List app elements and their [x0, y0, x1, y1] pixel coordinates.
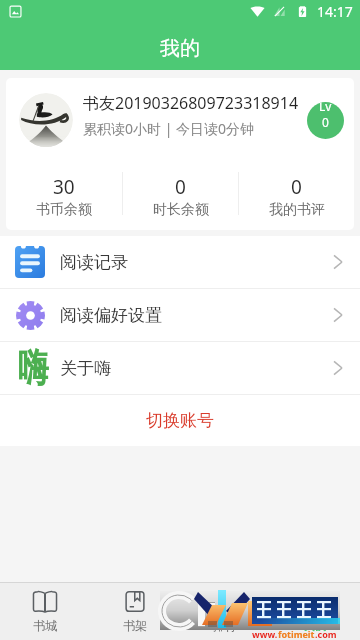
staticText: 阅读记录 — [60, 252, 330, 273]
staticText: 我的 — [160, 36, 200, 61]
staticText: 30 — [53, 174, 75, 200]
staticText: 关于嗨 — [60, 358, 330, 379]
staticText: 0 — [291, 174, 302, 200]
button[interactable]: 阅读偏好设置 — [0, 289, 360, 341]
button[interactable]: 0 — [239, 162, 354, 230]
staticText: 我的 — [303, 618, 327, 633]
staticText: 书城 — [33, 618, 57, 633]
staticText: 阅读偏好设置 — [60, 305, 330, 326]
staticText: fotimeit — [278, 628, 315, 640]
staticText: 时长余额 — [153, 201, 209, 219]
button[interactable]: 阅读记录 — [0, 236, 360, 288]
button[interactable]: 排行 — [180, 583, 270, 640]
staticText: 书架 — [123, 618, 147, 633]
staticText: 我的书评 — [269, 201, 325, 219]
button[interactable]: 0 — [123, 162, 238, 230]
staticText: www. — [252, 628, 278, 640]
staticText: 书币余额 — [36, 201, 92, 219]
button[interactable]: 嗨 — [0, 342, 360, 394]
button[interactable]: 书城 — [0, 583, 90, 640]
staticText: 14:17 — [317, 2, 353, 21]
staticText: 累积读0小时 | 今日读0分钟 — [83, 119, 255, 138]
button[interactable]: 书架 — [90, 583, 180, 640]
staticText: Lv — [319, 102, 332, 114]
staticText: .com — [315, 628, 337, 640]
staticText: 0 — [322, 114, 329, 130]
staticText: 书友20190326809723318914 — [83, 92, 299, 114]
staticText: 切换账号 — [146, 410, 214, 431]
staticText: 嗨 — [18, 343, 42, 392]
staticText: 排行 — [213, 618, 237, 633]
button[interactable]: 切换账号 — [0, 395, 360, 446]
button[interactable]: 30 — [6, 162, 122, 230]
staticText: 0 — [175, 174, 186, 200]
button[interactable]: 我的 — [270, 583, 360, 640]
